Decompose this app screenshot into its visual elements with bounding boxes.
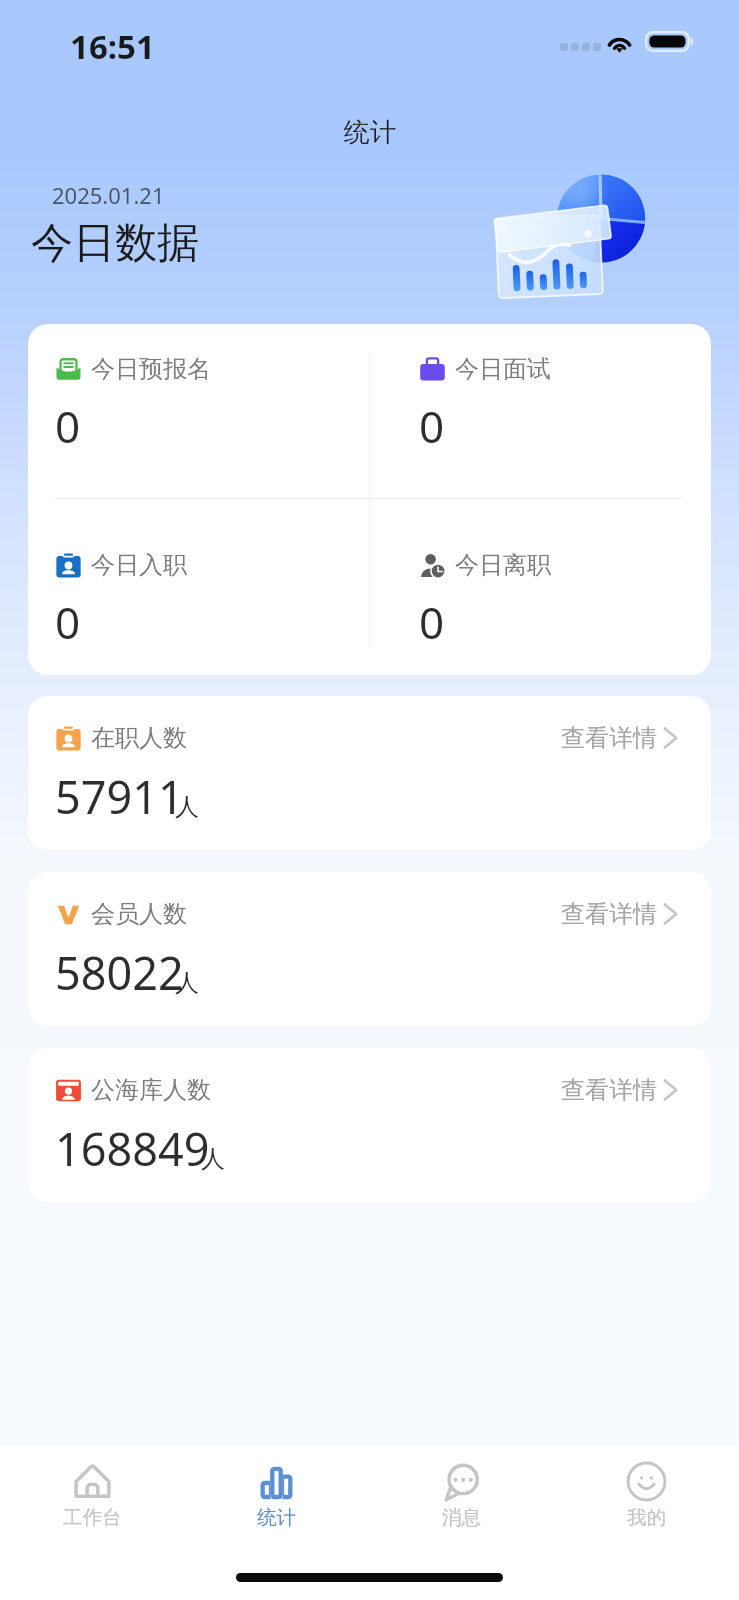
staticText: 会员人数 [91,899,187,929]
button[interactable]: 会员人数 [28,872,711,1026]
staticText: 消息 [442,1505,481,1530]
button[interactable]: 在职人数 [28,696,711,850]
button[interactable]: 工作台 [0,1445,184,1545]
button[interactable]: 消息 [369,1445,554,1545]
staticText: 57911 [55,766,184,827]
staticText: 58022 [55,942,184,1003]
staticText: 在职人数 [91,723,187,753]
staticText: 168849 [55,1118,210,1179]
staticText: 统计 [344,116,396,149]
staticText: 统计 [257,1505,296,1530]
staticText: 0 [55,396,81,456]
staticText: 查看详情 [561,1075,657,1105]
button[interactable]: 今日入职 [28,499,369,675]
button[interactable]: 今日预报名 [28,324,369,498]
staticText: 今日面试 [455,354,551,384]
staticText: 0 [55,592,81,652]
staticText: 工作台 [63,1505,122,1530]
staticText: 今日入职 [91,550,187,580]
button[interactable]: 我的 [554,1445,739,1545]
staticText: 16:51 [70,24,155,69]
staticText: 人 [175,968,199,998]
staticText: 查看详情 [561,723,657,753]
staticText: 0 [419,592,445,652]
button[interactable]: 今日面试 [370,324,711,498]
staticText: 人 [201,1144,225,1174]
staticText: 公海库人数 [91,1075,211,1105]
staticText: 我的 [627,1505,666,1530]
staticText: 0 [419,396,445,456]
button[interactable]: 公海库人数 [28,1048,711,1202]
staticText: 人 [175,792,199,822]
staticText: 今日离职 [455,550,551,580]
button[interactable]: 统计 [184,1445,369,1545]
button[interactable]: 今日离职 [370,499,711,675]
staticText: 今日预报名 [91,354,211,384]
staticText: 2025.01.21 [52,180,165,210]
staticText: 查看详情 [561,899,657,929]
staticText: 今日数据 [31,217,199,270]
